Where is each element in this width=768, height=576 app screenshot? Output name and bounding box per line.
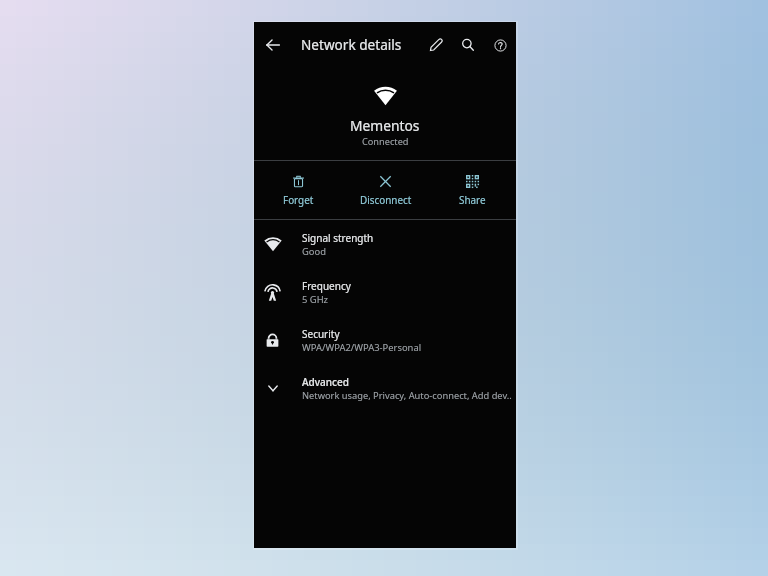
button[interactable]: Frequency [254, 268, 516, 316]
button[interactable]: Advanced [254, 364, 516, 412]
button[interactable]: Forget [254, 161, 342, 219]
button[interactable]: Back [259, 31, 287, 59]
button[interactable]: Help [486, 31, 514, 59]
button[interactable]: Edit [422, 31, 450, 59]
staticText: Mementos [350, 116, 420, 135]
staticText: Connected [362, 135, 409, 148]
button[interactable]: Share [429, 161, 516, 219]
staticText: Share [459, 193, 486, 206]
staticText: Network details [301, 35, 402, 54]
staticText: 5 GHz [302, 293, 329, 306]
staticText: Advanced [302, 375, 349, 389]
button[interactable]: Security [254, 316, 516, 364]
button[interactable]: Search [454, 31, 482, 59]
staticText: Forget [283, 193, 314, 206]
staticText: Network usage, Privacy, Auto-connect, Ad… [302, 389, 512, 402]
staticText: Security [302, 327, 340, 341]
button[interactable]: Signal strength [254, 220, 516, 268]
staticText: Frequency [302, 279, 351, 293]
staticText: Good [302, 245, 326, 258]
staticText: Disconnect [360, 193, 412, 206]
staticText: Signal strength [302, 231, 374, 245]
button[interactable]: Disconnect [342, 161, 429, 219]
staticText: WPA/WPA2/WPA3-Personal [302, 341, 422, 354]
